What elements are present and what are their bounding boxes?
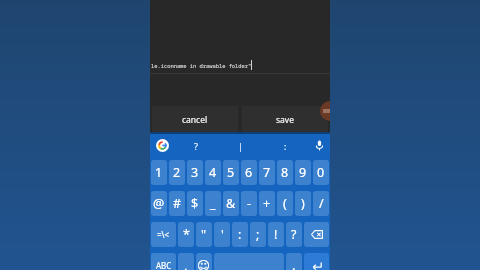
- button[interactable]: Backspace: [304, 222, 329, 247]
- button[interactable]: Google search: [150, 134, 174, 157]
- staticText: _: [210, 195, 216, 212]
- staticText: ?: [291, 226, 297, 243]
- button[interactable]: ?: [286, 222, 302, 247]
- staticText: cancel: [182, 114, 208, 126]
- staticText: le.iconname in drawable folder": [151, 62, 252, 69]
- staticText: ☺: [197, 258, 211, 270]
- button[interactable]: ;: [250, 222, 266, 247]
- staticText: ": [201, 226, 207, 243]
- button[interactable]: ': [214, 222, 230, 247]
- button[interactable]: cancel: [152, 106, 238, 133]
- button[interactable]: ABC: [151, 253, 176, 270]
- button[interactable]: Enter: [304, 253, 329, 270]
- button[interactable]: save: [242, 106, 328, 133]
- button[interactable]: =\<: [151, 222, 176, 247]
- staticText: 8: [281, 164, 289, 181]
- button[interactable]: 1: [151, 160, 167, 185]
- staticText: 0: [317, 164, 325, 181]
- button[interactable]: 5: [223, 160, 239, 185]
- button[interactable]: 4: [205, 160, 221, 185]
- staticText: /: [319, 195, 324, 212]
- button[interactable]: 9: [295, 160, 311, 185]
- staticText: 4: [209, 164, 217, 181]
- button[interactable]: &: [223, 191, 239, 216]
- button[interactable]: +: [259, 191, 275, 216]
- button[interactable]: Add: [320, 101, 330, 121]
- staticText: $: [191, 195, 199, 212]
- staticText: #: [173, 195, 182, 212]
- button[interactable]: 7: [259, 160, 275, 185]
- staticText: -: [247, 195, 252, 212]
- button[interactable]: :: [232, 222, 248, 247]
- button[interactable]: #: [169, 191, 185, 216]
- staticText: +: [263, 195, 271, 212]
- button[interactable]: /: [313, 191, 329, 216]
- staticText: ): [301, 195, 305, 212]
- staticText: (: [283, 195, 287, 212]
- staticText: |: [238, 140, 243, 152]
- button[interactable]: -: [241, 191, 257, 216]
- staticText: 5: [227, 164, 235, 181]
- staticText: ?: [194, 140, 198, 152]
- button[interactable]: ☺: [196, 253, 212, 270]
- button[interactable]: :: [263, 134, 308, 157]
- staticText: 6: [245, 164, 253, 181]
- staticText: ;: [256, 226, 260, 243]
- staticText: =\<: [157, 229, 170, 240]
- button[interactable]: *: [178, 222, 194, 247]
- button[interactable]: 8: [277, 160, 293, 185]
- staticText: 7: [263, 164, 271, 181]
- button[interactable]: ": [196, 222, 212, 247]
- staticText: &: [226, 195, 236, 212]
- staticText: save: [276, 114, 294, 126]
- button[interactable]: 0: [313, 160, 329, 185]
- staticText: @: [153, 195, 165, 212]
- staticText: :: [284, 140, 287, 152]
- button[interactable]: @: [151, 191, 167, 216]
- button[interactable]: ?: [174, 134, 218, 157]
- button[interactable]: .: [286, 253, 302, 270]
- button[interactable]: 2: [169, 160, 185, 185]
- button[interactable]: Voice input: [308, 134, 330, 157]
- staticText: 1: [155, 164, 163, 181]
- button[interactable]: !: [268, 222, 284, 247]
- staticText: ': [221, 226, 224, 243]
- staticText: 2: [173, 164, 181, 181]
- staticText: !: [274, 226, 278, 243]
- button[interactable]: (: [277, 191, 293, 216]
- staticText: 3: [191, 164, 199, 181]
- button[interactable]: ,: [178, 253, 194, 270]
- staticText: *: [183, 226, 190, 243]
- staticText: ABC: [156, 260, 172, 270]
- staticText: ,: [184, 257, 188, 270]
- button[interactable]: ): [295, 191, 311, 216]
- button[interactable]: |: [218, 134, 263, 157]
- button[interactable]: 6: [241, 160, 257, 185]
- staticText: 9: [299, 164, 307, 181]
- staticText: :: [238, 226, 242, 243]
- button[interactable]: _: [205, 191, 221, 216]
- button[interactable]: 3: [187, 160, 203, 185]
- button[interactable]: $: [187, 191, 203, 216]
- staticText: .: [292, 257, 296, 270]
